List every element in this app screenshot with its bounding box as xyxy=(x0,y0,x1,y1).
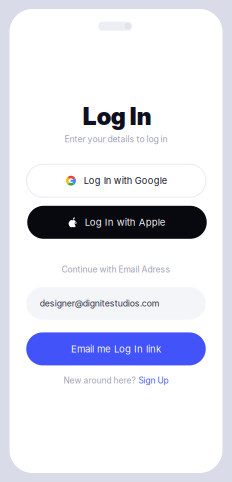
button[interactable]: Email me Log In link xyxy=(26,332,206,365)
staticText: Enter your details to log in xyxy=(64,134,167,144)
button[interactable]: Log In with Apple xyxy=(27,206,207,239)
button[interactable]: Log In with Google xyxy=(26,164,206,197)
staticText: Log In with Apple xyxy=(85,216,166,228)
staticText: designer@dignitestudios.com xyxy=(40,298,160,309)
staticText: Continue with Email Adress xyxy=(61,264,170,274)
button[interactable]: Sign Up xyxy=(138,375,168,386)
staticText: Email me Log In link xyxy=(71,343,161,355)
staticText: New around here? xyxy=(63,375,135,386)
staticText: Sign Up xyxy=(138,375,168,386)
staticText: Log In xyxy=(83,102,152,131)
staticText: Log In with Google xyxy=(84,175,167,186)
